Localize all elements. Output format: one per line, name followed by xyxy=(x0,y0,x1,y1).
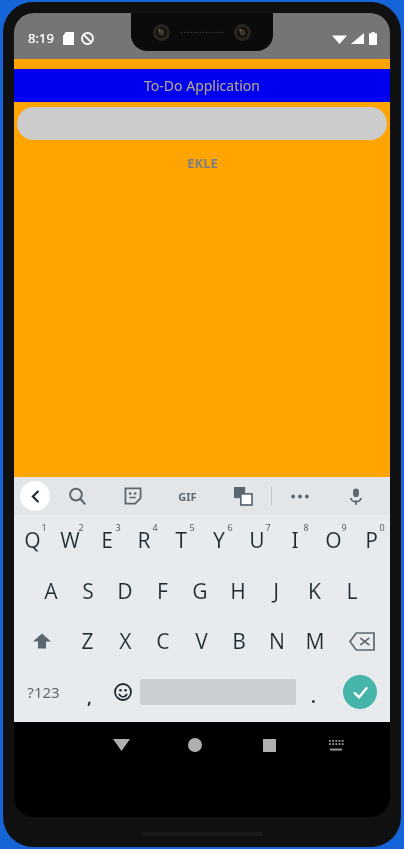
button[interactable]: N xyxy=(258,616,296,666)
staticText: 3 xyxy=(115,521,121,533)
button[interactable]: More options xyxy=(272,477,328,515)
staticText: A xyxy=(44,577,58,606)
button[interactable]: D xyxy=(106,566,143,616)
button[interactable]: W xyxy=(51,515,88,566)
button[interactable]: A xyxy=(32,566,69,616)
button[interactable]: S xyxy=(69,566,106,616)
button[interactable]: Hide keyboard xyxy=(84,722,158,768)
button[interactable]: EKLE xyxy=(14,154,390,172)
staticText: E xyxy=(101,526,113,555)
button[interactable]: U xyxy=(238,515,276,566)
staticText: G xyxy=(192,577,208,606)
staticText: V xyxy=(195,627,208,656)
button[interactable]: Home xyxy=(158,722,232,768)
button[interactable]: C xyxy=(144,616,182,666)
button[interactable]: Change keyboard xyxy=(306,722,365,768)
staticText: J xyxy=(273,577,279,606)
staticText: L xyxy=(346,577,358,606)
staticText: . xyxy=(311,685,316,708)
staticText: ?123 xyxy=(27,682,60,702)
button[interactable]: V xyxy=(182,616,220,666)
staticText: 1 xyxy=(41,521,47,533)
button[interactable]: Enter xyxy=(330,666,390,718)
button[interactable]: E xyxy=(88,515,125,566)
button[interactable]: R xyxy=(125,515,162,566)
staticText: P xyxy=(365,526,378,555)
staticText: I xyxy=(291,526,299,555)
staticText: GIF xyxy=(178,489,197,504)
button[interactable]: ?123 xyxy=(14,666,73,718)
staticText: W xyxy=(60,526,80,555)
staticText: 7 xyxy=(265,521,271,533)
staticText: 0 xyxy=(379,521,385,533)
staticText: C xyxy=(156,627,170,656)
button[interactable]: Shift xyxy=(14,616,69,666)
button[interactable]: Recent apps xyxy=(232,722,306,768)
staticText: D xyxy=(117,577,133,606)
staticText: Q xyxy=(24,526,41,555)
staticText: O xyxy=(325,526,342,555)
button[interactable]: X xyxy=(106,616,144,666)
staticText: B xyxy=(232,627,246,656)
button[interactable]: F xyxy=(143,566,181,616)
staticText: X xyxy=(119,627,132,656)
button[interactable]: G xyxy=(181,566,219,616)
button[interactable]: B xyxy=(220,616,258,666)
staticText: S xyxy=(82,577,94,606)
button[interactable]: I xyxy=(276,515,314,566)
button[interactable]: Search xyxy=(50,477,105,515)
staticText: H xyxy=(230,577,246,606)
staticText: Z xyxy=(81,627,94,656)
button[interactable]: Back xyxy=(20,481,50,511)
button[interactable]: J xyxy=(257,566,295,616)
staticText: K xyxy=(308,577,321,606)
staticText: T xyxy=(175,526,187,555)
button[interactable]: Y xyxy=(200,515,238,566)
button[interactable]: P xyxy=(352,515,390,566)
button[interactable] xyxy=(17,107,387,140)
staticText: F xyxy=(157,577,168,606)
staticText: EKLE xyxy=(187,154,218,172)
button[interactable]: Backspace xyxy=(334,616,390,666)
button[interactable]: Emoji xyxy=(106,666,140,718)
button[interactable]: K xyxy=(295,566,333,616)
button[interactable]: Z xyxy=(69,616,106,666)
button[interactable]: O xyxy=(314,515,352,566)
button[interactable]: Translate xyxy=(215,477,271,515)
staticText: Y xyxy=(213,526,225,555)
staticText: R xyxy=(137,526,151,555)
staticText: M xyxy=(305,627,325,656)
button[interactable]: Voice input xyxy=(328,477,384,515)
button[interactable]: L xyxy=(333,566,371,616)
staticText: 4 xyxy=(152,521,158,533)
button[interactable]: GIF xyxy=(160,477,215,515)
staticText: 8:19 xyxy=(28,29,54,47)
button[interactable]: M xyxy=(296,616,334,666)
staticText: 5 xyxy=(189,521,195,533)
staticText: 6 xyxy=(227,521,233,533)
staticText: U xyxy=(249,526,265,555)
staticText: 9 xyxy=(341,521,347,533)
button[interactable]: T xyxy=(162,515,200,566)
staticText: , xyxy=(87,686,92,709)
button[interactable]: Stickers xyxy=(105,477,160,515)
button[interactable]: . xyxy=(296,666,330,718)
button[interactable]: , xyxy=(73,666,106,718)
button[interactable]: Q xyxy=(14,515,51,566)
button[interactable]: To-Do Application xyxy=(14,69,390,102)
button[interactable]: H xyxy=(219,566,257,616)
staticText: 2 xyxy=(78,521,84,533)
staticText: N xyxy=(269,627,285,656)
staticText: 8 xyxy=(303,521,309,533)
staticText: To-Do Application xyxy=(144,76,260,95)
